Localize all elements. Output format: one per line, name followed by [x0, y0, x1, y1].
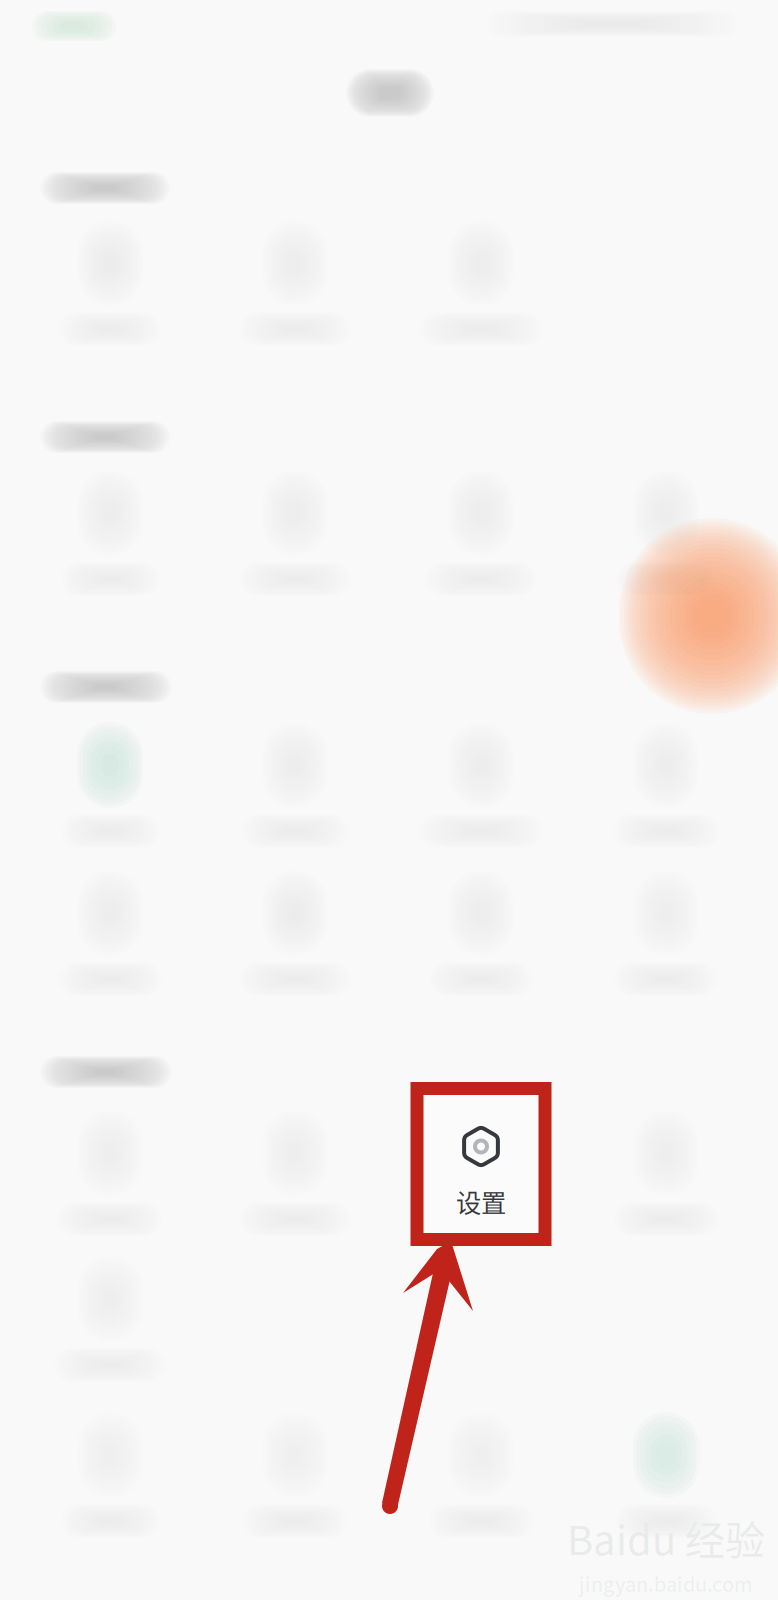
staticText: jingyan.baidu.com — [579, 1568, 753, 1597]
button[interactable] — [22, 858, 198, 1008]
button[interactable]: 设置 — [422, 1093, 540, 1234]
button[interactable] — [578, 1098, 754, 1248]
button[interactable] — [578, 458, 754, 608]
button[interactable] — [207, 458, 383, 608]
button[interactable] — [578, 1400, 754, 1550]
button[interactable] — [393, 458, 569, 608]
button[interactable] — [393, 710, 569, 860]
button[interactable] — [393, 1400, 569, 1550]
button[interactable] — [393, 208, 569, 358]
button[interactable] — [22, 1098, 198, 1248]
staticText: Baidu 经验 — [567, 1509, 765, 1566]
button[interactable] — [393, 858, 569, 1008]
button[interactable] — [207, 710, 383, 860]
button[interactable] — [207, 858, 383, 1008]
button[interactable] — [207, 1400, 383, 1550]
button[interactable] — [22, 1244, 198, 1394]
button[interactable] — [22, 208, 198, 358]
button[interactable] — [22, 710, 198, 860]
button[interactable] — [22, 458, 198, 608]
button[interactable] — [578, 858, 754, 1008]
button[interactable] — [207, 208, 383, 358]
button[interactable] — [578, 710, 754, 860]
staticText: 设置 — [456, 1183, 506, 1220]
button[interactable] — [207, 1098, 383, 1248]
